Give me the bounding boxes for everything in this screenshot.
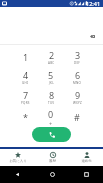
button[interactable]: 1 (13, 47, 38, 67)
staticText: 履歴 (49, 159, 56, 163)
button[interactable]: 8 (38, 87, 64, 107)
button[interactable]: 4 (13, 67, 38, 87)
staticText: 1 (23, 51, 29, 63)
button[interactable]: 3 (64, 47, 90, 67)
button[interactable]: 0 (38, 107, 64, 127)
button[interactable]: Recents (69, 166, 103, 183)
staticText: 連絡先 (81, 159, 92, 163)
staticText: 5 (48, 69, 54, 81)
staticText: * (23, 111, 28, 123)
staticText: 9 (75, 89, 81, 101)
button[interactable]: # (64, 107, 90, 127)
staticText: 7 (23, 89, 29, 101)
button[interactable]: 履歴 (35, 149, 69, 166)
staticText: 3 (75, 49, 81, 61)
button[interactable]: Backspace (86, 30, 99, 43)
staticText: MNO (73, 81, 82, 85)
button[interactable]: お気に入り (0, 149, 35, 166)
staticText: 12:41 (86, 0, 101, 7)
staticText: 8 (49, 89, 55, 101)
staticText: PQRS (21, 101, 30, 105)
button[interactable]: Call (32, 127, 71, 142)
staticText: TUV (48, 101, 55, 105)
staticText: ABC (48, 61, 55, 65)
staticText: 2 (49, 49, 55, 61)
button[interactable]: 6 (64, 67, 90, 87)
staticText: + (49, 120, 53, 127)
button[interactable]: Back (0, 166, 35, 183)
button[interactable]: 連絡先 (69, 149, 103, 166)
button[interactable]: Home (35, 166, 69, 183)
staticText: JKL (49, 81, 54, 85)
staticText: お気に入り (9, 159, 27, 163)
staticText: GHI (22, 81, 29, 85)
button[interactable]: * (13, 107, 38, 127)
staticText: 0 (48, 108, 54, 120)
staticText: WXYZ (73, 101, 82, 105)
button[interactable]: 7 (13, 87, 38, 107)
button[interactable]: 9 (64, 87, 90, 107)
staticText: 6 (75, 69, 81, 81)
button[interactable]: 2 (38, 47, 64, 67)
staticText: # (74, 111, 80, 123)
staticText: 4 (23, 69, 29, 81)
button[interactable]: 5 (38, 67, 64, 87)
staticText: DEF (74, 61, 81, 65)
